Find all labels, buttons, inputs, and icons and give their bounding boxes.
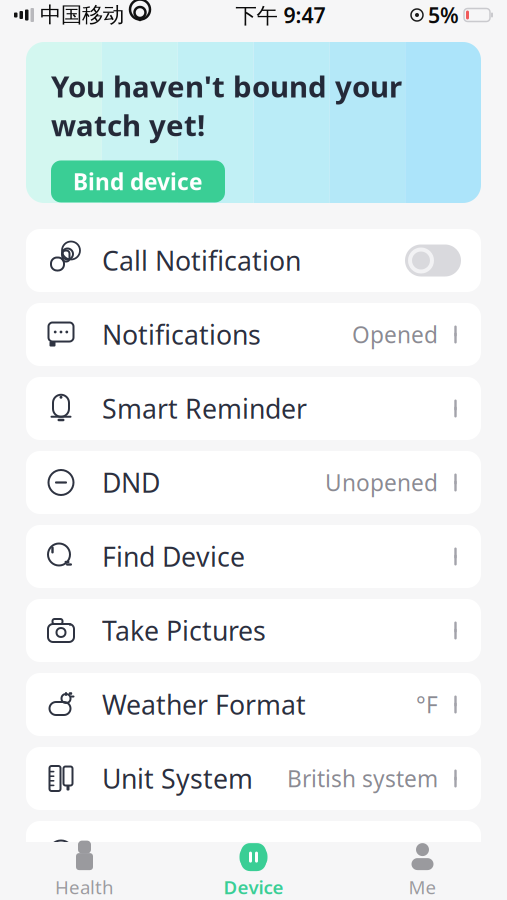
staticText: Weather Format bbox=[102, 687, 306, 722]
staticText: Bind device bbox=[73, 166, 203, 196]
button[interactable]: Find Device bbox=[26, 525, 481, 588]
staticText: Call Notification bbox=[102, 243, 301, 278]
staticText: 5% bbox=[428, 1, 459, 29]
button[interactable]: Notifications bbox=[26, 303, 481, 366]
button[interactable]: Weather Format bbox=[26, 673, 481, 736]
staticText: Health bbox=[55, 875, 114, 899]
staticText: Opened bbox=[352, 319, 438, 349]
staticText: Take Pictures bbox=[102, 613, 266, 648]
staticText: Device bbox=[223, 875, 283, 899]
staticText: Me bbox=[408, 875, 436, 899]
button[interactable]: Smart Reminder bbox=[26, 377, 481, 440]
staticText: Screen Setting bbox=[102, 835, 282, 870]
staticText: Unit System bbox=[102, 761, 253, 796]
staticText: Smart Reminder bbox=[102, 391, 307, 426]
staticText: British system bbox=[287, 763, 438, 793]
button[interactable]: Health bbox=[0, 842, 169, 900]
button[interactable]: DND bbox=[26, 451, 481, 514]
button[interactable]: Call Notification bbox=[26, 229, 481, 292]
staticText: Find Device bbox=[102, 539, 245, 574]
staticText: °F bbox=[416, 689, 438, 719]
button[interactable]: Device bbox=[169, 842, 338, 900]
staticText: 中国移动 bbox=[40, 2, 124, 28]
staticText: Notifications bbox=[102, 317, 261, 352]
staticText: Unopened bbox=[325, 467, 438, 497]
button[interactable]: Bind device bbox=[51, 160, 225, 202]
staticText: You haven't bound your watch yet! bbox=[51, 66, 402, 144]
staticText: 下午 9:47 bbox=[235, 1, 325, 29]
button[interactable]: Unit System bbox=[26, 747, 481, 810]
button[interactable]: Me bbox=[338, 842, 507, 900]
button[interactable]: Screen Setting bbox=[26, 821, 481, 884]
button[interactable]: Take Pictures bbox=[26, 599, 481, 662]
staticText: DND bbox=[102, 465, 160, 500]
